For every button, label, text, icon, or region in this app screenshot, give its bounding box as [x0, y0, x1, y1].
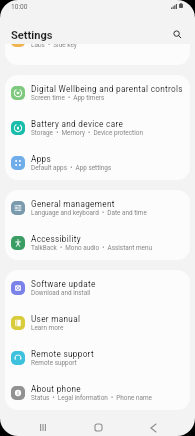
button[interactable]: Search — [169, 26, 186, 43]
staticText: Download and install — [31, 289, 91, 297]
button[interactable]: Software update — [5, 270, 190, 305]
staticText: Remote support — [31, 359, 77, 367]
staticText: Settings — [11, 29, 53, 42]
staticText: Accessibility — [31, 234, 81, 244]
staticText: Apps — [31, 154, 52, 164]
button[interactable]: Labs — [5, 44, 190, 65]
staticText: Screen time • App timers — [31, 94, 105, 102]
button[interactable]: Remote support — [5, 340, 190, 375]
button[interactable]: General management — [5, 190, 190, 225]
staticText: Learn more — [31, 324, 64, 332]
button[interactable]: About phone — [5, 375, 190, 410]
button[interactable]: Back — [139, 415, 167, 436]
staticText: Storage • Memory • Device protection — [31, 129, 143, 137]
staticText: Labs • Side key — [31, 44, 77, 49]
staticText: Remote support — [31, 349, 94, 359]
button[interactable]: Accessibility — [5, 225, 190, 260]
button[interactable]: Battery and device care — [5, 110, 190, 145]
button[interactable]: Apps — [5, 145, 190, 180]
staticText: Software update — [31, 279, 96, 289]
staticText: 10:00 — [11, 3, 28, 11]
staticText: Language and keyboard • Date and time — [31, 209, 147, 217]
staticText: Battery and device care — [31, 119, 124, 129]
staticText: Default apps • App settings — [31, 164, 112, 172]
button[interactable]: Digital Wellbeing and parental controls — [5, 75, 190, 110]
button[interactable]: Home — [84, 415, 112, 436]
button[interactable]: Recents — [29, 415, 57, 436]
staticText: Digital Wellbeing and parental controls — [31, 84, 183, 94]
staticText: Status • Legal information • Phone name — [31, 394, 153, 402]
staticText: TalkBack • Mono audio • Assistant menu — [31, 244, 152, 252]
button[interactable]: User manual — [5, 305, 190, 340]
staticText: General management — [31, 199, 115, 209]
staticText: About phone — [31, 384, 81, 394]
staticText: User manual — [31, 314, 81, 324]
